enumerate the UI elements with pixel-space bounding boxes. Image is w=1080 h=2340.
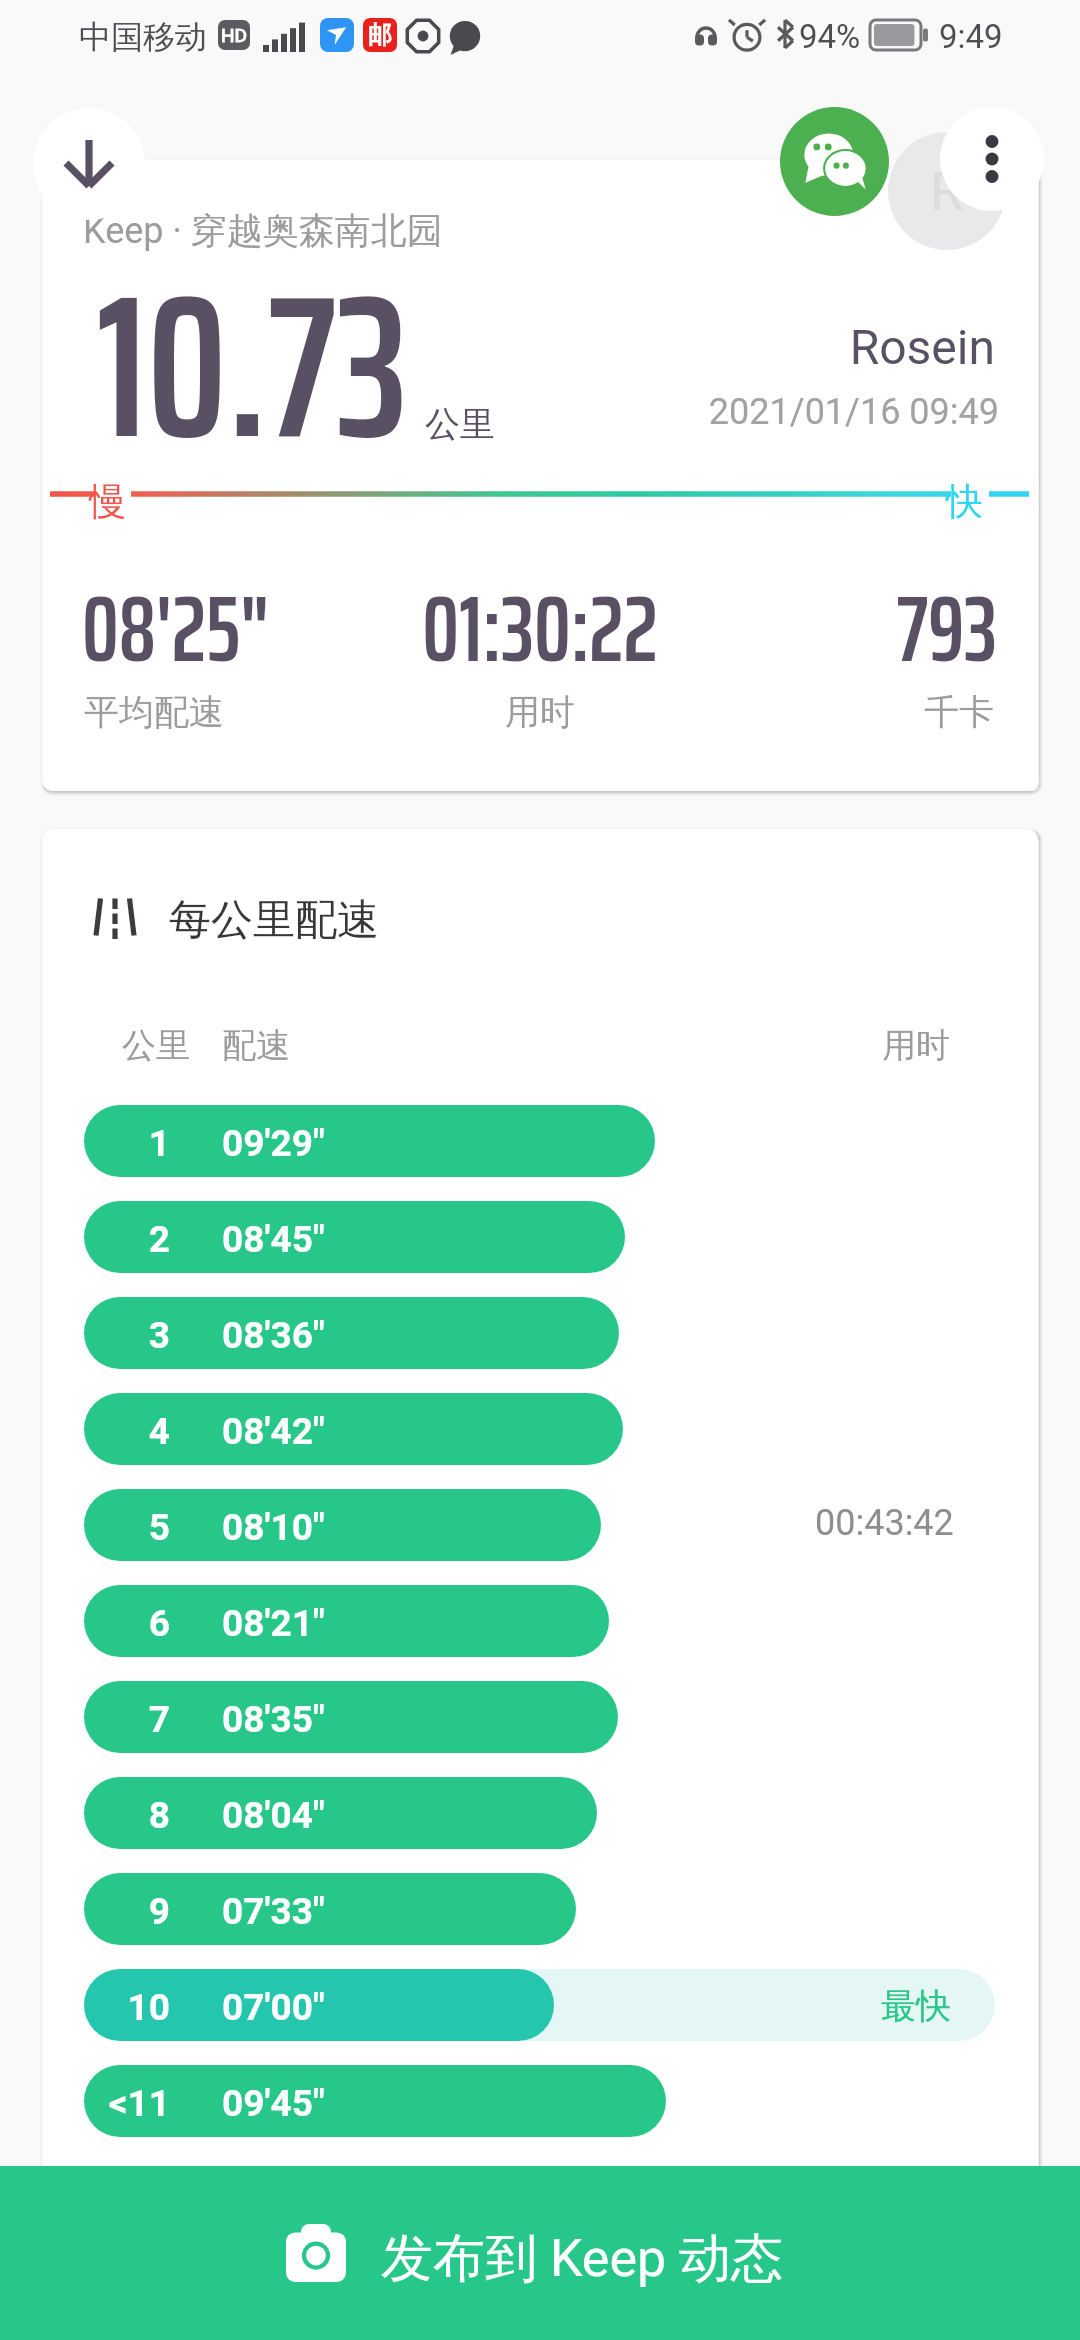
- staticText: 公里: [122, 1024, 190, 1067]
- button[interactable]: <11: [84, 2065, 995, 2137]
- staticText: 10: [50, 1986, 170, 2029]
- staticText: 00:43:42: [815, 1502, 954, 1544]
- staticText: 08'42": [222, 1410, 325, 1453]
- staticText: 慢: [89, 478, 126, 525]
- staticText: 09'45": [222, 2082, 325, 2125]
- button[interactable]: 4: [84, 1393, 995, 1465]
- button[interactable]: 7: [84, 1681, 995, 1753]
- staticText: 公里: [425, 402, 495, 446]
- button[interactable]: 8: [84, 1777, 995, 1849]
- staticText: 2: [50, 1218, 170, 1261]
- staticText: 10.73: [96, 209, 408, 524]
- staticText: 3: [50, 1314, 170, 1357]
- staticText: 7: [50, 1698, 170, 1741]
- staticText: 01:30:22: [390, 557, 690, 702]
- staticText: 快: [946, 478, 983, 525]
- staticText: 8: [50, 1794, 170, 1837]
- staticText: 中国移动: [79, 17, 207, 57]
- staticText: <11: [50, 2082, 170, 2125]
- button[interactable]: 3: [84, 1297, 995, 1369]
- staticText: 1: [50, 1122, 170, 1165]
- staticText: 最快: [881, 1984, 951, 2028]
- button[interactable]: 9: [84, 1873, 995, 1945]
- staticText: 08'10": [222, 1506, 325, 1549]
- staticText: 09'29": [222, 1122, 325, 1165]
- staticText: 用时: [882, 1024, 950, 1067]
- button[interactable]: 6: [84, 1585, 995, 1657]
- staticText: 08'36": [222, 1314, 325, 1357]
- staticText: 9:49: [939, 17, 1003, 56]
- staticText: HD: [221, 24, 248, 46]
- staticText: 08'21": [222, 1602, 325, 1645]
- button[interactable]: 2: [84, 1201, 995, 1273]
- staticText: 平均配速: [84, 690, 384, 734]
- staticText: 793: [697, 557, 997, 702]
- button[interactable]: 1: [84, 1105, 995, 1177]
- staticText: 08'35": [222, 1698, 325, 1741]
- staticText: 08'25": [82, 557, 382, 702]
- button[interactable]: 10: [84, 1969, 995, 2041]
- button[interactable]: 发布到 Keep 动态: [0, 2166, 1080, 2340]
- button[interactable]: Save image: [33, 108, 145, 220]
- staticText: 4: [50, 1410, 170, 1453]
- staticText: R: [930, 160, 964, 223]
- staticText: 发布到 Keep 动态: [381, 2226, 784, 2292]
- staticText: 07'33": [222, 1890, 325, 1933]
- staticText: Keep · 穿越奥森南北园: [83, 208, 443, 253]
- staticText: 07'00": [222, 1986, 325, 2029]
- staticText: 2021/01/16 09:49: [673, 391, 999, 433]
- staticText: 5: [50, 1506, 170, 1549]
- button[interactable]: 5: [84, 1489, 995, 1561]
- staticText: 08'04": [222, 1794, 325, 1837]
- staticText: Rosein: [735, 319, 995, 375]
- staticText: 6: [50, 1602, 170, 1645]
- staticText: 94%: [799, 17, 861, 56]
- staticText: 用时: [390, 690, 690, 734]
- staticText: 9: [50, 1890, 170, 1933]
- button[interactable]: More options: [940, 107, 1044, 211]
- button[interactable]: Share to WeChat: [780, 107, 889, 216]
- staticText: 08'45": [222, 1218, 325, 1261]
- staticText: 邮: [368, 20, 392, 50]
- button[interactable]: Profile avatar: [888, 132, 1006, 250]
- staticText: 千卡: [694, 690, 994, 734]
- staticText: 每公里配速: [169, 894, 379, 947]
- staticText: 配速: [222, 1024, 290, 1067]
